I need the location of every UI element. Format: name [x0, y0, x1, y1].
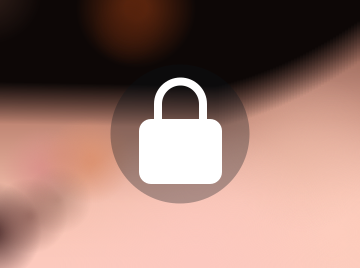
button[interactable]: Locked: [0, 0, 360, 268]
